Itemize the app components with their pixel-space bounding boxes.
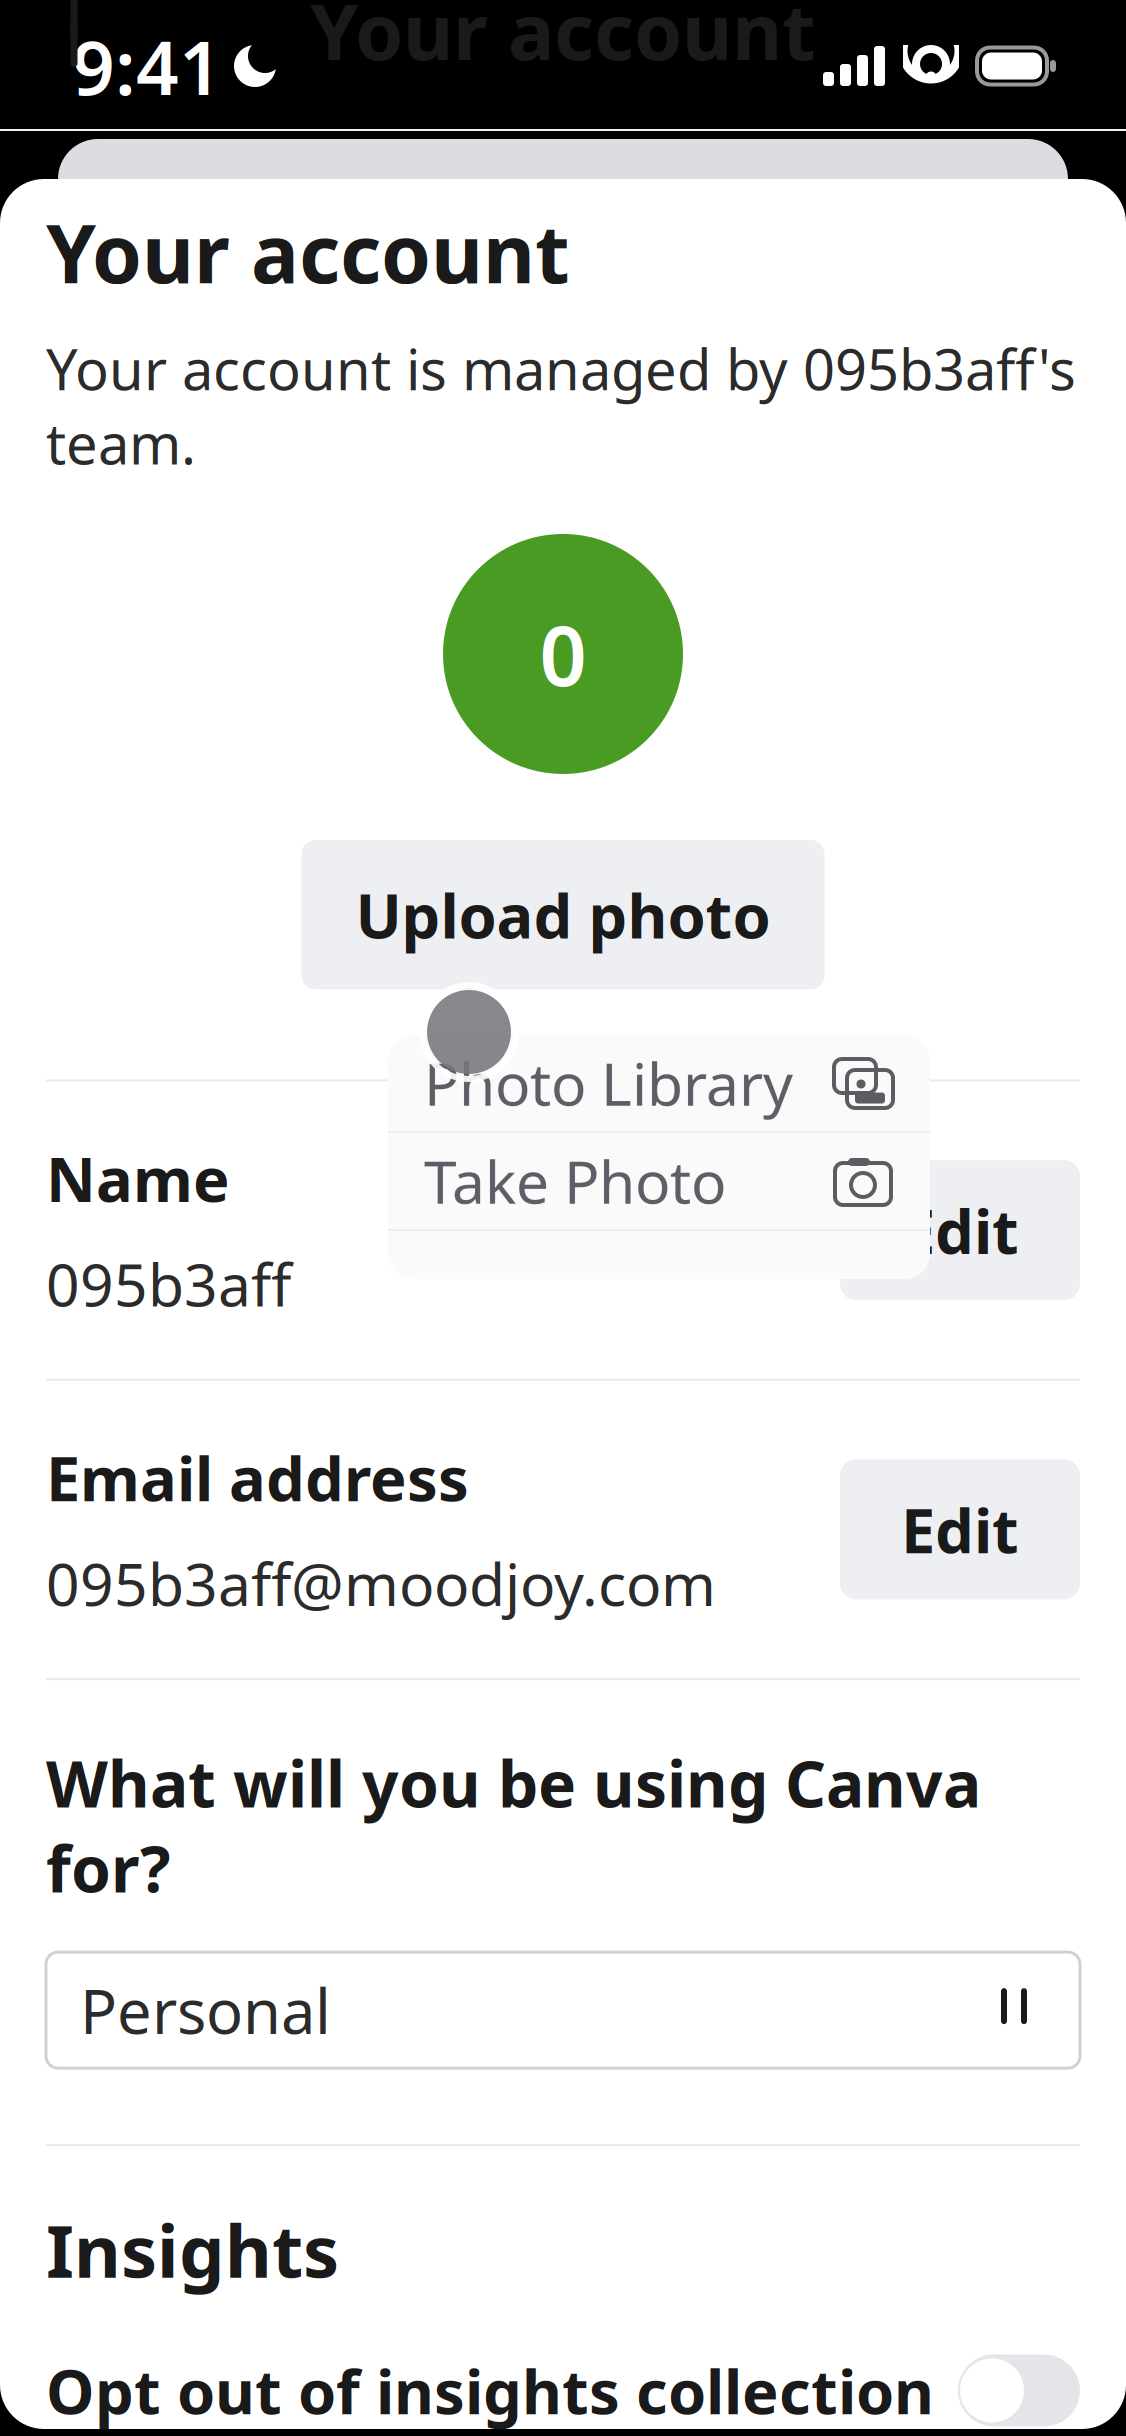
staticText: Upload photo bbox=[355, 874, 770, 955]
staticText: 095b3aff bbox=[46, 1245, 291, 1323]
button[interactable]: Take Photo bbox=[388, 1133, 930, 1229]
staticText: Photo Library bbox=[424, 1044, 793, 1122]
button[interactable]: Edit bbox=[840, 1160, 1080, 1300]
staticText: Edit bbox=[901, 1489, 1019, 1570]
staticText: Your account bbox=[46, 199, 570, 305]
staticText: Email address bbox=[46, 1437, 469, 1518]
staticText: 9:41 bbox=[72, 16, 222, 116]
staticText: 095b3aff@moodjoy.com bbox=[46, 1544, 716, 1622]
staticText: Personal bbox=[80, 1969, 331, 2051]
staticText: What will you be using Canva for? bbox=[46, 1740, 981, 1910]
button[interactable]: Personal bbox=[46, 1952, 1080, 2068]
staticText: Edit bbox=[901, 1189, 1019, 1271]
staticText: Take Photo bbox=[424, 1142, 726, 1220]
staticText: Opt out of insights collection bbox=[46, 2350, 934, 2431]
staticText: Your account is managed by 095b3aff's te… bbox=[46, 331, 1076, 480]
button[interactable]: Upload photo bbox=[301, 840, 824, 989]
staticText: Your account bbox=[310, 0, 816, 81]
button[interactable]: Edit bbox=[840, 1459, 1080, 1599]
staticText: 0 bbox=[539, 599, 586, 709]
button[interactable]: Photo Library bbox=[388, 1035, 930, 1131]
button[interactable]: Opt out of insights collection bbox=[46, 2298, 1080, 2431]
staticText: Insights bbox=[46, 2202, 339, 2298]
button[interactable]: Back bbox=[28, 0, 138, 85]
staticText: Name bbox=[46, 1137, 230, 1219]
